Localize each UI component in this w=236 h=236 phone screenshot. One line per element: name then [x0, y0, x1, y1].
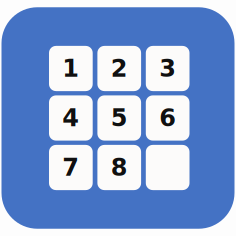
- button[interactable]: 4: [49, 95, 93, 141]
- button[interactable]: 6: [146, 95, 189, 141]
- staticText: 7: [62, 153, 79, 181]
- button[interactable]: 3: [146, 46, 189, 91]
- staticText: 5: [111, 104, 128, 132]
- staticText: 1: [62, 54, 79, 82]
- button[interactable]: 2: [97, 46, 141, 91]
- button[interactable]: 1: [49, 46, 93, 91]
- staticText: 6: [159, 104, 176, 132]
- staticText: 3: [159, 54, 176, 82]
- staticText: 8: [111, 153, 128, 181]
- staticText: 4: [62, 104, 79, 132]
- button[interactable]: [146, 145, 189, 190]
- button[interactable]: 8: [97, 145, 141, 190]
- staticText: 2: [111, 54, 128, 82]
- button[interactable]: 5: [97, 95, 141, 141]
- button[interactable]: 7: [49, 145, 93, 190]
